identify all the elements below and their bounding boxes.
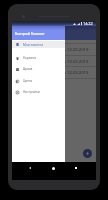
button[interactable]: Recent apps: [72, 164, 80, 172]
button[interactable]: Новая заметка - создана 12.03.2019 14:22: [12, 43, 96, 55]
button[interactable]: Мои заметки: [12, 41, 65, 48]
staticText: Цвета: [23, 79, 33, 83]
button[interactable]: Цвета: [12, 75, 65, 87]
staticText: Новая заметка - создана 12.03.2019 14:22: [16, 47, 96, 53]
button[interactable]: Home: [49, 164, 57, 172]
button[interactable]: Архив: [12, 63, 65, 75]
staticText: Настройки: [23, 90, 40, 94]
staticText: Мои заметки: [23, 43, 44, 47]
button[interactable]: [12, 26, 96, 162]
button[interactable]: Новая заметка - создана 12.03.2019 14:22: [12, 66, 96, 78]
button[interactable]: Back: [26, 164, 34, 172]
button[interactable]: Настройки: [12, 86, 65, 98]
button[interactable]: Корзина: [12, 52, 65, 64]
button[interactable]: Новая заметка - создана 12.03.2019 14:22: [12, 55, 96, 67]
staticText: Быстрый Блокнот: [15, 31, 45, 36]
staticText: Корзина: [23, 56, 37, 60]
staticText: Архив: [23, 67, 33, 71]
staticText: Новая заметка - создана 12.03.2019 14:22: [16, 59, 96, 65]
staticText: 14:22: [83, 21, 93, 26]
staticText: Новая заметка - создана 12.03.2019 14:22: [16, 70, 96, 76]
button[interactable]: New note: [83, 149, 92, 158]
